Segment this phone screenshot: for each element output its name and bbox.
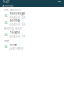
staticText: ends in 5h	[9, 23, 25, 26]
staticText: •••	[58, 0, 61, 4]
staticText: just listed	[9, 47, 23, 50]
staticText: Settings	[2, 4, 13, 7]
staticText: G	[4, 13, 7, 18]
button[interactable]: G	[0, 43, 64, 50]
staticText: Live auctions	[4, 8, 21, 11]
button[interactable]: G	[0, 31, 64, 38]
button[interactable]: G	[0, 19, 64, 26]
staticText: ends in 1h	[9, 35, 25, 38]
staticText: Porsche	[9, 31, 20, 34]
staticText: G	[4, 20, 7, 25]
button[interactable]: G	[0, 12, 64, 19]
staticText: Ending soon	[4, 27, 22, 30]
staticText: 9:41	[3, 0, 10, 4]
staticText: Rolls Royce	[9, 12, 25, 15]
staticText: Ferrari	[9, 43, 17, 46]
staticText: G	[4, 44, 7, 49]
staticText: New	[4, 39, 9, 42]
staticText: ends in 2h	[9, 16, 25, 19]
staticText: Bentley	[9, 19, 19, 22]
staticText: G	[4, 32, 7, 37]
